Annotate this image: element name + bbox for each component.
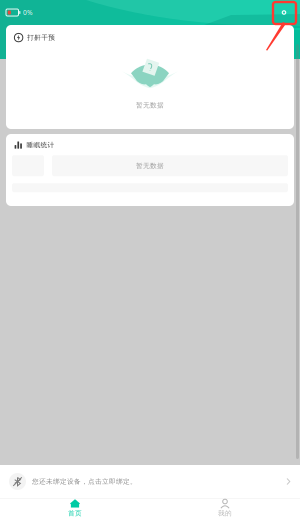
button[interactable]: 您还未绑定设备，点击立即绑定。 [0,465,300,498]
button[interactable]: Settings [273,2,294,23]
staticText: 睡眠统计 [26,141,54,149]
button[interactable]: 首页 [0,499,150,518]
staticText: 我的 [218,509,232,517]
staticText: 打鼾干预 [27,33,55,42]
button[interactable]: 我的 [150,499,300,518]
staticText: 暂无数据 [136,162,164,170]
staticText: 0% [23,8,33,17]
staticText: 暂无数据 [136,101,164,109]
staticText: 首页 [68,509,82,517]
staticText: 您还未绑定设备，点击立即绑定。 [32,477,137,486]
